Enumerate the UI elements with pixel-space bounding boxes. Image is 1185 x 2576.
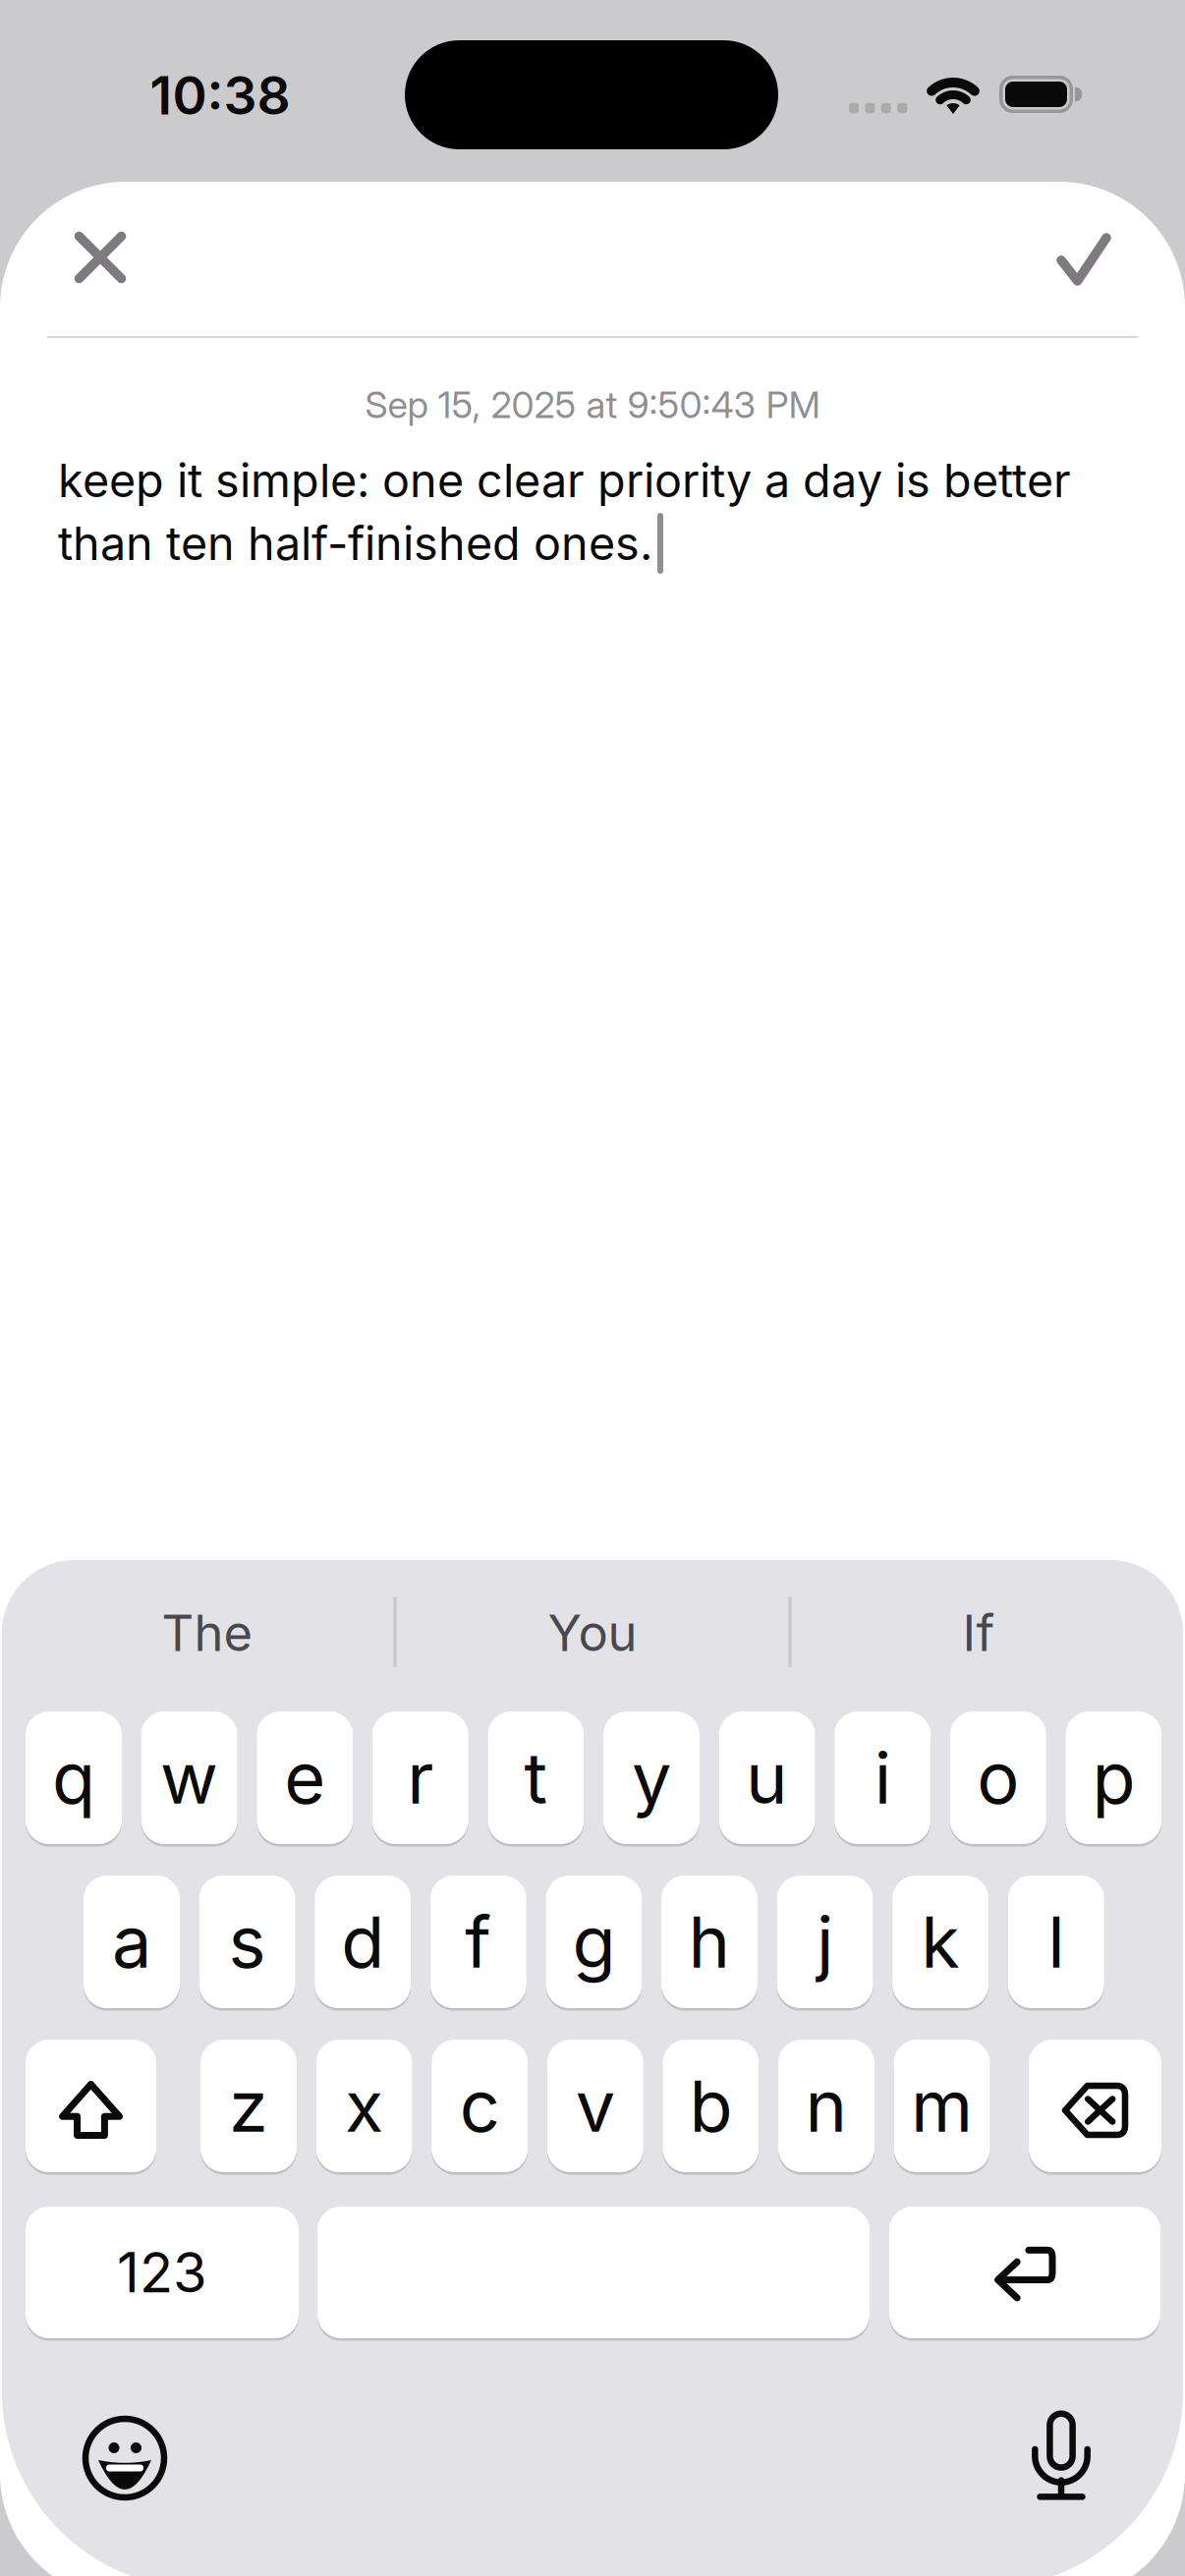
button[interactable]: v (547, 2040, 643, 2172)
button[interactable]: You (406, 1579, 779, 1687)
button[interactable] (26, 2040, 156, 2172)
button[interactable]: h (661, 1876, 758, 2008)
staticText: c (460, 2063, 500, 2149)
staticText: v (576, 2063, 615, 2149)
button[interactable]: o (950, 1711, 1046, 1844)
staticText: q (52, 1735, 95, 1820)
staticText: p (1092, 1735, 1135, 1820)
staticText: 10:38 (150, 64, 290, 127)
button[interactable]: f (430, 1876, 526, 2008)
staticText: If (962, 1603, 995, 1663)
button[interactable]: r (372, 1711, 468, 1844)
button[interactable]: e (257, 1711, 353, 1844)
staticText: r (407, 1735, 434, 1820)
button[interactable]: The (21, 1579, 394, 1687)
staticText: d (341, 1899, 384, 1985)
staticText: 123 (117, 2239, 207, 2306)
button[interactable]: x (316, 2040, 412, 2172)
staticText: The (162, 1603, 253, 1663)
button[interactable]: y (603, 1711, 700, 1844)
button[interactable]: t (488, 1711, 584, 1844)
staticText: l (1048, 1899, 1064, 1985)
staticText: m (911, 2063, 973, 2149)
button[interactable]: j (777, 1876, 873, 2008)
staticText: f (465, 1899, 492, 1985)
button[interactable]: w (141, 1711, 237, 1844)
button[interactable]: s (199, 1876, 295, 2008)
staticText: n (805, 2063, 847, 2149)
button[interactable] (78, 2411, 172, 2505)
staticText: b (689, 2063, 732, 2149)
button[interactable]: c (432, 2040, 528, 2172)
button[interactable]: m (894, 2040, 990, 2172)
staticText: z (229, 2063, 268, 2149)
button[interactable]: i (834, 1711, 931, 1844)
button[interactable]: k (892, 1876, 989, 2008)
button[interactable]: q (26, 1711, 122, 1844)
staticText: keep it simple: one clear priority a day… (58, 453, 1071, 508)
button[interactable]: n (778, 2040, 875, 2172)
button[interactable]: a (84, 1876, 180, 2008)
button[interactable]: l (1008, 1876, 1104, 2008)
button[interactable]: u (719, 1711, 815, 1844)
staticText: w (160, 1735, 218, 1820)
button[interactable] (1033, 2413, 1090, 2499)
button[interactable]: 123 (26, 2207, 299, 2338)
staticText: i (874, 1735, 891, 1820)
button[interactable]: z (200, 2040, 297, 2172)
staticText: o (977, 1735, 1019, 1820)
button[interactable] (79, 236, 121, 279)
button[interactable]: b (663, 2040, 759, 2172)
button[interactable] (889, 2207, 1160, 2338)
staticText: x (345, 2063, 383, 2149)
staticText: k (921, 1899, 960, 1985)
staticText: Sep 15, 2025 at 9:50:43 PM (365, 383, 820, 427)
button[interactable]: g (546, 1876, 642, 2008)
staticText: s (229, 1899, 266, 1985)
staticText: h (688, 1899, 731, 1985)
staticText: a (112, 1899, 151, 1985)
staticText: t (524, 1735, 548, 1820)
staticText: g (572, 1899, 615, 1985)
button[interactable]: p (1066, 1711, 1162, 1844)
staticText: than ten half-finished ones. (58, 516, 652, 571)
button[interactable] (1061, 238, 1106, 281)
staticText: e (284, 1735, 325, 1820)
button[interactable]: If (792, 1579, 1165, 1687)
staticText: y (632, 1735, 671, 1820)
button[interactable]: d (315, 1876, 411, 2008)
staticText: j (817, 1899, 833, 1985)
staticText: u (746, 1735, 788, 1820)
button[interactable] (1029, 2040, 1161, 2172)
staticText: You (548, 1603, 637, 1663)
